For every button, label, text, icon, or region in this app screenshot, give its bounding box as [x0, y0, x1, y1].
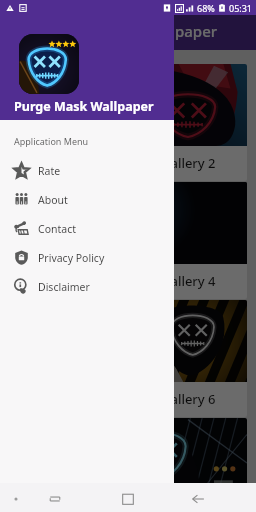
staticText: 68% [197, 2, 215, 14]
staticText: Disclaimer [38, 280, 90, 294]
button[interactable]: Privacy Policy [0, 243, 174, 272]
button[interactable]: Contact [0, 214, 174, 243]
button[interactable]: Gallery 3 [9, 182, 127, 299]
button[interactable]: Gallery 7 [9, 418, 127, 512]
staticText: Gallery 4 [161, 272, 216, 290]
staticText: Gallery 1 [41, 154, 96, 172]
staticText: Privacy Policy [38, 251, 105, 265]
button[interactable]: Home [112, 483, 144, 512]
button[interactable]: Options [0, 483, 32, 512]
staticText: Gallery 7 [41, 499, 96, 511]
button[interactable]: Back [182, 483, 214, 512]
staticText: Contact [38, 222, 76, 236]
button[interactable]: Disclaimer [0, 272, 174, 301]
staticText: Gallery 3 [41, 272, 96, 290]
staticText: Gallery 2 [161, 154, 216, 172]
staticText: Purge Mask Wallpaper [14, 98, 154, 115]
staticText: Purge Mask Wallpaper [56, 21, 218, 41]
button[interactable]: About [0, 185, 174, 214]
button[interactable]: Gallery 6 [129, 300, 247, 417]
button[interactable]: Gallery 8 [129, 418, 247, 512]
button[interactable]: Gallery 2 [129, 64, 247, 181]
staticText: Gallery 8 [161, 499, 216, 511]
button[interactable]: Recents [39, 483, 71, 512]
staticText: About [38, 193, 68, 207]
button[interactable]: Gallery 1 [9, 64, 127, 181]
staticText: Gallery 6 [161, 390, 216, 408]
staticText: 05:31 [229, 2, 253, 14]
button[interactable]: Gallery 4 [129, 182, 247, 299]
button[interactable]: Rate [0, 156, 174, 185]
staticText: Application Menu [14, 135, 89, 147]
staticText: Rate [38, 164, 61, 178]
